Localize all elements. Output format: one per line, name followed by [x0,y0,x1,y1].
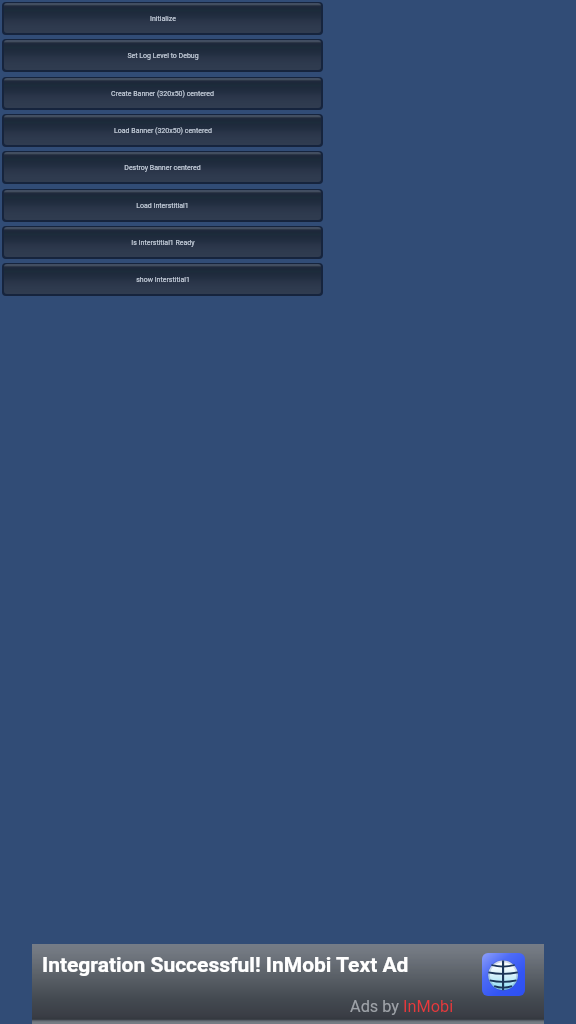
staticText: Integration Successful! InMobi Text Ad [42,953,409,978]
button[interactable]: Integration Successful! InMobi Text Ad [32,944,544,1024]
staticText: Is Interstitial1 Ready [131,239,195,247]
button[interactable]: Is Interstitial1 Ready [4,227,321,257]
button[interactable]: Set Log Level to Debug [4,40,321,70]
staticText: Ads by InMobi [350,997,454,1016]
button[interactable]: Initialize [4,3,321,33]
button[interactable]: Create Banner (320x50) centered [4,78,321,108]
staticText: Destroy Banner centered [124,164,201,172]
staticText: Load Banner (320x50) centered [114,127,212,135]
button[interactable]: show Interstitial1 [4,264,321,294]
staticText: Initialize [150,15,176,23]
button[interactable]: Load Banner (320x50) centered [4,115,321,145]
staticText: Create Banner (320x50) centered [111,90,214,98]
staticText: Load Interstitial1 [136,202,189,210]
button[interactable]: Destroy Banner centered [4,152,321,182]
button[interactable]: Ad advertiser icon [482,953,525,996]
staticText: Set Log Level to Debug [127,52,199,60]
button[interactable]: Load Interstitial1 [4,190,321,220]
staticText: show Interstitial1 [136,276,190,284]
